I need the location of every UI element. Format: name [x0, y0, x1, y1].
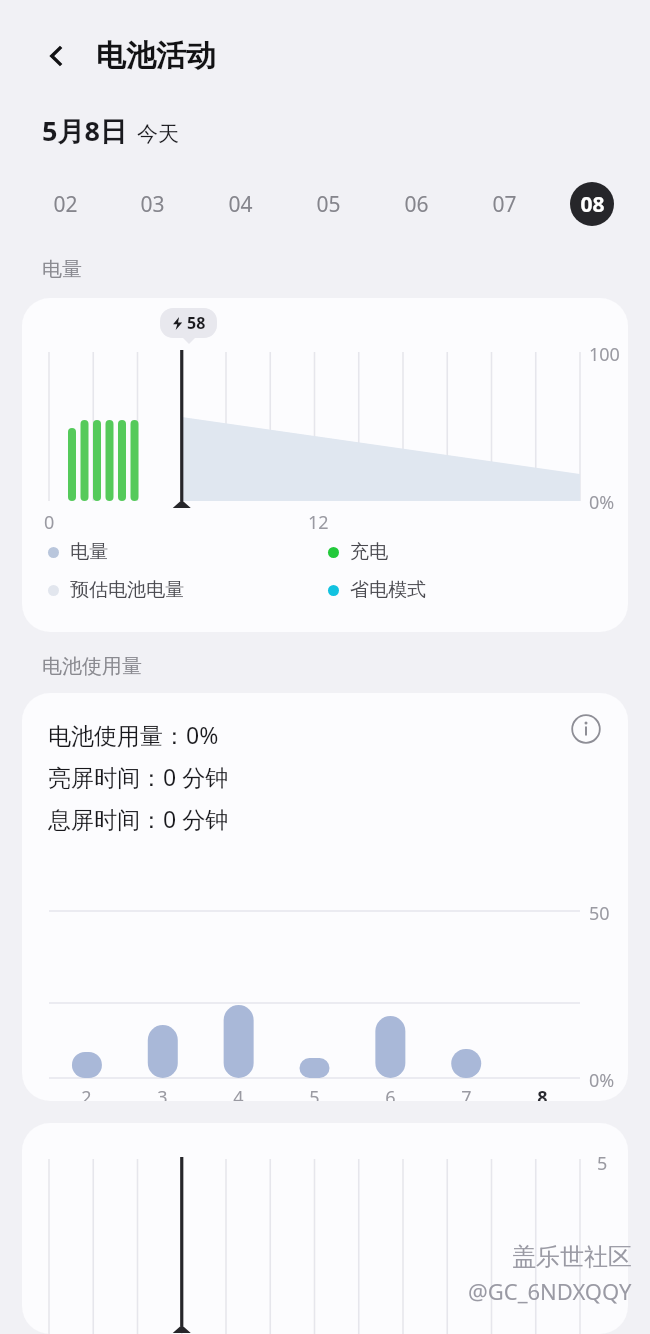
- staticText: 05: [316, 190, 341, 219]
- button[interactable]: 07: [460, 173, 548, 235]
- staticText: 08: [580, 190, 605, 219]
- button[interactable]: 06: [372, 173, 460, 235]
- staticText: 电池使用量：0%: [48, 719, 219, 750]
- button[interactable]: 02: [22, 173, 109, 235]
- staticText: 息屏时间：0 分钟: [48, 803, 229, 834]
- staticText: 充电: [350, 540, 388, 564]
- button[interactable]: 04: [196, 173, 284, 235]
- staticText: 7: [461, 1085, 472, 1101]
- button[interactable]: 05: [284, 173, 372, 235]
- staticText: 5月8日: [42, 112, 127, 149]
- staticText: 04: [228, 190, 253, 219]
- staticText: 50: [589, 901, 610, 926]
- staticText: 06: [404, 190, 429, 219]
- staticText: 电量: [70, 540, 108, 564]
- staticText: 03: [140, 190, 165, 219]
- button[interactable]: 省电模式: [328, 578, 448, 602]
- staticText: 58: [187, 312, 206, 334]
- staticText: @GC_6NDXQQY: [468, 1276, 632, 1306]
- staticText: 0: [44, 510, 55, 535]
- staticText: 电池使用量: [42, 654, 142, 679]
- button[interactable]: 08: [548, 173, 636, 235]
- staticText: 亮屏时间：0 分钟: [48, 761, 229, 792]
- button[interactable]: Information: [22, 693, 628, 1101]
- staticText: 5: [309, 1085, 320, 1101]
- staticText: 预估电池电量: [70, 578, 184, 602]
- staticText: 100: [589, 342, 620, 367]
- staticText: 3: [157, 1085, 168, 1101]
- staticText: 07: [492, 190, 517, 219]
- staticText: 4: [233, 1085, 244, 1101]
- staticText: 2: [81, 1085, 92, 1101]
- staticText: 0%: [589, 1068, 615, 1093]
- button[interactable]: Information: [566, 709, 606, 749]
- staticText: 6: [385, 1085, 396, 1101]
- staticText: 12: [308, 510, 329, 535]
- staticText: 02: [53, 190, 78, 219]
- staticText: 8: [537, 1085, 548, 1101]
- staticText: 今天: [137, 121, 179, 147]
- button[interactable]: 58: [22, 298, 628, 632]
- button[interactable]: 5: [22, 1123, 628, 1334]
- staticText: 盖乐世社区: [512, 1242, 632, 1272]
- button[interactable]: 充电: [328, 540, 448, 564]
- button[interactable]: 预估电池电量: [48, 578, 198, 602]
- button[interactable]: Back: [34, 33, 80, 79]
- staticText: 5: [597, 1151, 608, 1176]
- staticText: 省电模式: [350, 578, 426, 602]
- staticText: 电量: [42, 257, 82, 282]
- staticText: 0%: [589, 490, 615, 515]
- button[interactable]: 电量: [48, 540, 198, 564]
- button[interactable]: 03: [109, 173, 196, 235]
- staticText: 电池活动: [96, 37, 216, 75]
